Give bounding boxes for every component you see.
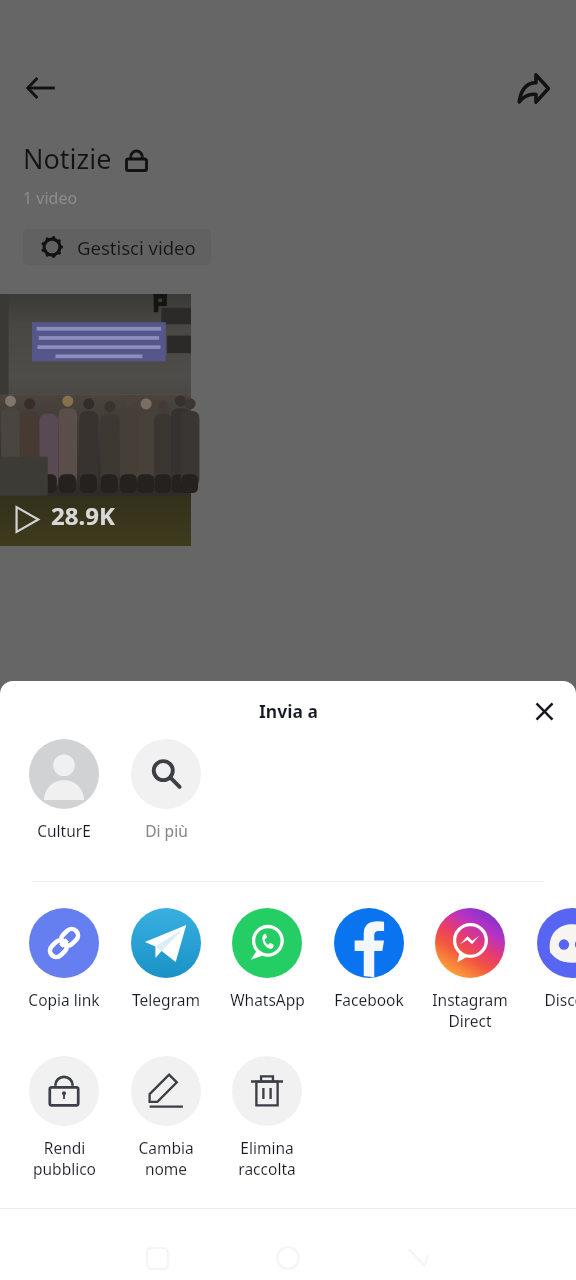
staticText: Invia a	[259, 699, 318, 723]
button[interactable]: Di più	[123, 739, 209, 841]
staticText: CulturE	[37, 820, 91, 841]
button[interactable]: Video, 28.9K views	[0, 294, 191, 546]
button[interactable]: Telegram	[123, 908, 209, 1010]
button[interactable]: Instagram Direct	[427, 908, 513, 1032]
staticText: Elimina raccolta	[238, 1137, 296, 1180]
staticText: Rendi pubblico	[33, 1137, 96, 1180]
button[interactable]: Home	[270, 1240, 306, 1276]
staticText: Copia link	[28, 989, 100, 1010]
staticText: 1 video	[23, 187, 78, 209]
staticText: Instagram Direct	[432, 989, 508, 1032]
button[interactable]: Rendi pubblico	[21, 1056, 107, 1180]
staticText: Notizie	[23, 140, 112, 177]
staticText: WhatsApp	[230, 989, 305, 1010]
staticText: Gestisci video	[77, 235, 196, 260]
staticText: Di più	[145, 820, 188, 841]
button[interactable]: Elimina raccolta	[224, 1056, 310, 1180]
button[interactable]: CulturE	[21, 739, 107, 841]
staticText: Telegram	[132, 989, 200, 1010]
button[interactable]: Recent apps	[139, 1240, 175, 1276]
button[interactable]: Back	[17, 64, 64, 111]
button[interactable]: WhatsApp	[224, 908, 310, 1010]
button[interactable]: Cambia nome	[123, 1056, 209, 1180]
staticText: 28.9K	[51, 499, 115, 532]
button[interactable]: Close	[522, 689, 566, 733]
button[interactable]: Gestisci video	[23, 229, 211, 265]
staticText: Facebook	[334, 989, 404, 1010]
button[interactable]: Facebook	[326, 908, 412, 1010]
button[interactable]: Copia link	[21, 908, 107, 1010]
staticText: Discord	[544, 989, 576, 1010]
staticText: Cambia nome	[138, 1137, 194, 1180]
button[interactable]: Discord	[529, 908, 576, 1010]
button[interactable]: Share	[509, 64, 557, 112]
